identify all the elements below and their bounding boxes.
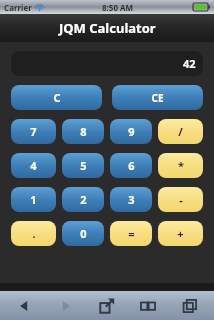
staticText: 7 [30, 124, 37, 139]
staticText: - [179, 192, 183, 207]
staticText: / [178, 124, 183, 139]
button[interactable]: - [158, 187, 203, 212]
staticText: * [178, 158, 184, 173]
button[interactable]: C [11, 85, 102, 110]
staticText: + [177, 226, 184, 241]
button[interactable]: Bookmarks [131, 292, 165, 320]
staticText: 8 [80, 124, 87, 139]
button[interactable]: = [110, 221, 152, 246]
staticText: JQM Calculator [59, 19, 156, 37]
button[interactable]: 2 [62, 187, 104, 212]
button[interactable]: . [11, 221, 56, 246]
staticText: . [32, 226, 36, 241]
staticText: 0 [80, 226, 87, 241]
button[interactable]: 0 [62, 221, 104, 246]
staticText: 5 [80, 158, 87, 173]
staticText: 8:50 AM [102, 2, 134, 13]
staticText: C [53, 90, 61, 105]
button[interactable]: 9 [110, 119, 152, 144]
button[interactable]: / [158, 119, 203, 144]
button[interactable]: CE [112, 85, 203, 110]
button[interactable]: 6 [110, 153, 152, 178]
button[interactable]: 4 [11, 153, 56, 178]
staticText: = [128, 226, 135, 241]
button[interactable]: 5 [62, 153, 104, 178]
button[interactable]: Tabs [173, 292, 207, 320]
button[interactable]: 3 [110, 187, 152, 212]
staticText: Carrier [4, 2, 32, 13]
button[interactable]: * [158, 153, 203, 178]
button[interactable]: 7 [11, 119, 56, 144]
staticText: 3 [128, 192, 135, 207]
button[interactable]: Forward [49, 292, 83, 320]
staticText: CE [151, 91, 164, 105]
staticText: 42 [183, 56, 196, 71]
staticText: 4 [30, 158, 37, 173]
button[interactable]: Share [90, 292, 124, 320]
staticText: 2 [80, 192, 87, 207]
button[interactable]: 1 [11, 187, 56, 212]
staticText: 6 [128, 158, 135, 173]
button[interactable]: + [158, 221, 203, 246]
button[interactable]: 8 [62, 119, 104, 144]
staticText: 1 [30, 192, 37, 207]
button[interactable]: Back [7, 292, 41, 320]
staticText: 9 [128, 124, 135, 139]
